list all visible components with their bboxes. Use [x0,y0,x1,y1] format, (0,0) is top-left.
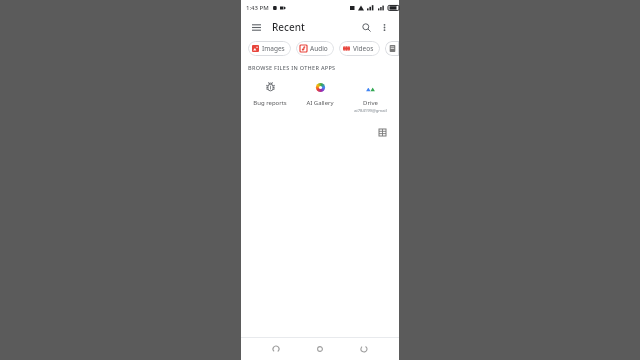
button[interactable]: Change view [375,125,389,139]
staticText: BROWSE FILES IN OTHER APPS [248,64,336,71]
button[interactable]: More options [376,19,392,35]
button[interactable]: Search [358,19,374,35]
staticText: Drive [363,99,378,107]
button[interactable]: AI Gallery [295,75,345,112]
button[interactable]: Images [248,41,291,56]
button[interactable]: Back [267,340,285,358]
button[interactable]: Drive [345,75,395,119]
button[interactable] [385,41,399,56]
staticText: Bug reports [253,99,287,107]
staticText: Audio [310,44,328,53]
button[interactable]: Open navigation drawer [248,19,264,35]
button[interactable]: Bug reports [245,75,295,112]
staticText: Videos [353,44,374,53]
button[interactable]: Videos [339,41,380,56]
button[interactable]: Recent apps [355,340,373,358]
staticText: AI Gallery [306,99,334,107]
staticText: 1:43 PM [246,4,269,12]
staticText: Recent [272,20,305,34]
staticText: Images [262,44,285,53]
button[interactable]: Audio [296,41,334,56]
staticText: ai784199@gmail [354,108,387,114]
button[interactable]: Home [311,340,329,358]
